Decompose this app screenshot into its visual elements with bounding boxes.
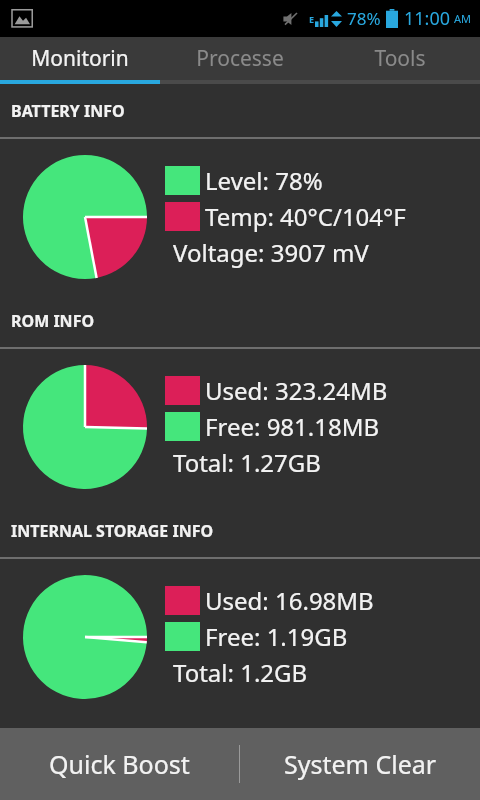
staticText: Used: 16.98MB — [205, 584, 374, 617]
staticText: Total: 1.27GB — [173, 446, 321, 479]
button[interactable]: Used: 16.98MB — [0, 559, 480, 714]
staticText: Voltage: 3907 mV — [173, 236, 369, 269]
staticText: Total: 1.2GB — [173, 656, 308, 689]
staticText: 11:00 — [404, 6, 451, 31]
staticText: Processe — [196, 44, 284, 73]
button[interactable]: System Clear — [240, 728, 480, 800]
staticText: Used: 323.24MB — [205, 374, 388, 407]
staticText: System Clear — [284, 747, 437, 781]
button[interactable]: Monitorin — [0, 37, 160, 80]
button[interactable]: Tools — [320, 37, 480, 80]
staticText: ROM INFO — [11, 310, 95, 332]
staticText: INTERNAL STORAGE INFO — [11, 520, 214, 542]
staticText: E — [309, 13, 315, 25]
staticText: Level: 78% — [205, 164, 323, 197]
staticText: Temp: 40°C/104°F — [205, 200, 406, 233]
staticText: AM — [454, 11, 472, 26]
staticText: Tools — [374, 44, 426, 73]
staticText: Free: 981.18MB — [205, 410, 380, 443]
button[interactable]: Quick Boost — [0, 728, 239, 800]
button[interactable]: Level: 78% — [0, 139, 480, 294]
staticText: Quick Boost — [49, 747, 190, 781]
button[interactable]: Used: 323.24MB — [0, 349, 480, 504]
staticText: 78% — [347, 7, 381, 30]
staticText: BATTERY INFO — [11, 100, 125, 122]
staticText: Free: 1.19GB — [205, 620, 348, 653]
staticText: Monitorin — [31, 44, 129, 73]
button[interactable]: Processe — [160, 37, 320, 80]
